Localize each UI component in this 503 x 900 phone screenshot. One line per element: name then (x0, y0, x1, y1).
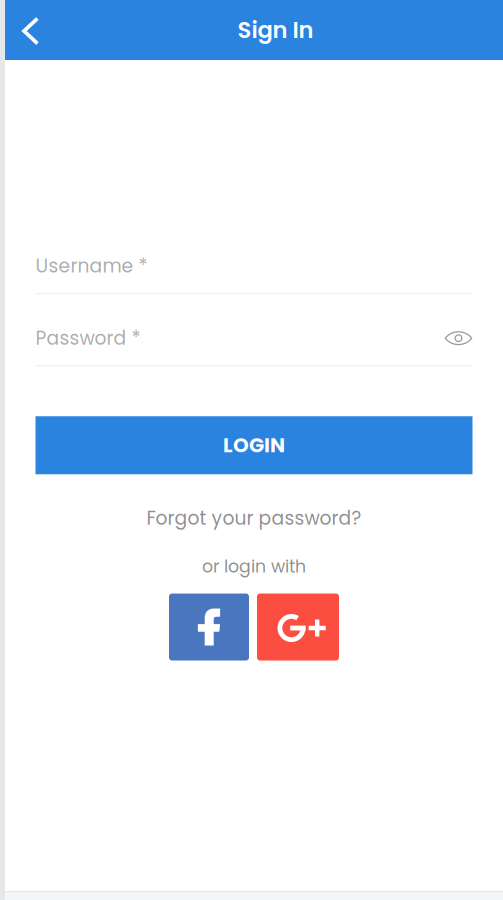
staticText: Sign In (237, 14, 313, 46)
staticText: Password * (35, 325, 140, 351)
button[interactable]: Log in with Google Plus (257, 593, 339, 660)
button[interactable]: Show password (442, 325, 472, 351)
button[interactable]: Back (5, 0, 48, 60)
staticText: or login with (202, 554, 306, 579)
button[interactable]: Forgot your password? (35, 505, 472, 531)
button[interactable]: Log in with Facebook (169, 593, 249, 660)
button[interactable]: LOGIN (35, 416, 472, 474)
staticText: Forgot your password? (146, 505, 361, 531)
staticText: LOGIN (223, 431, 285, 459)
staticText: Username * (35, 253, 147, 279)
